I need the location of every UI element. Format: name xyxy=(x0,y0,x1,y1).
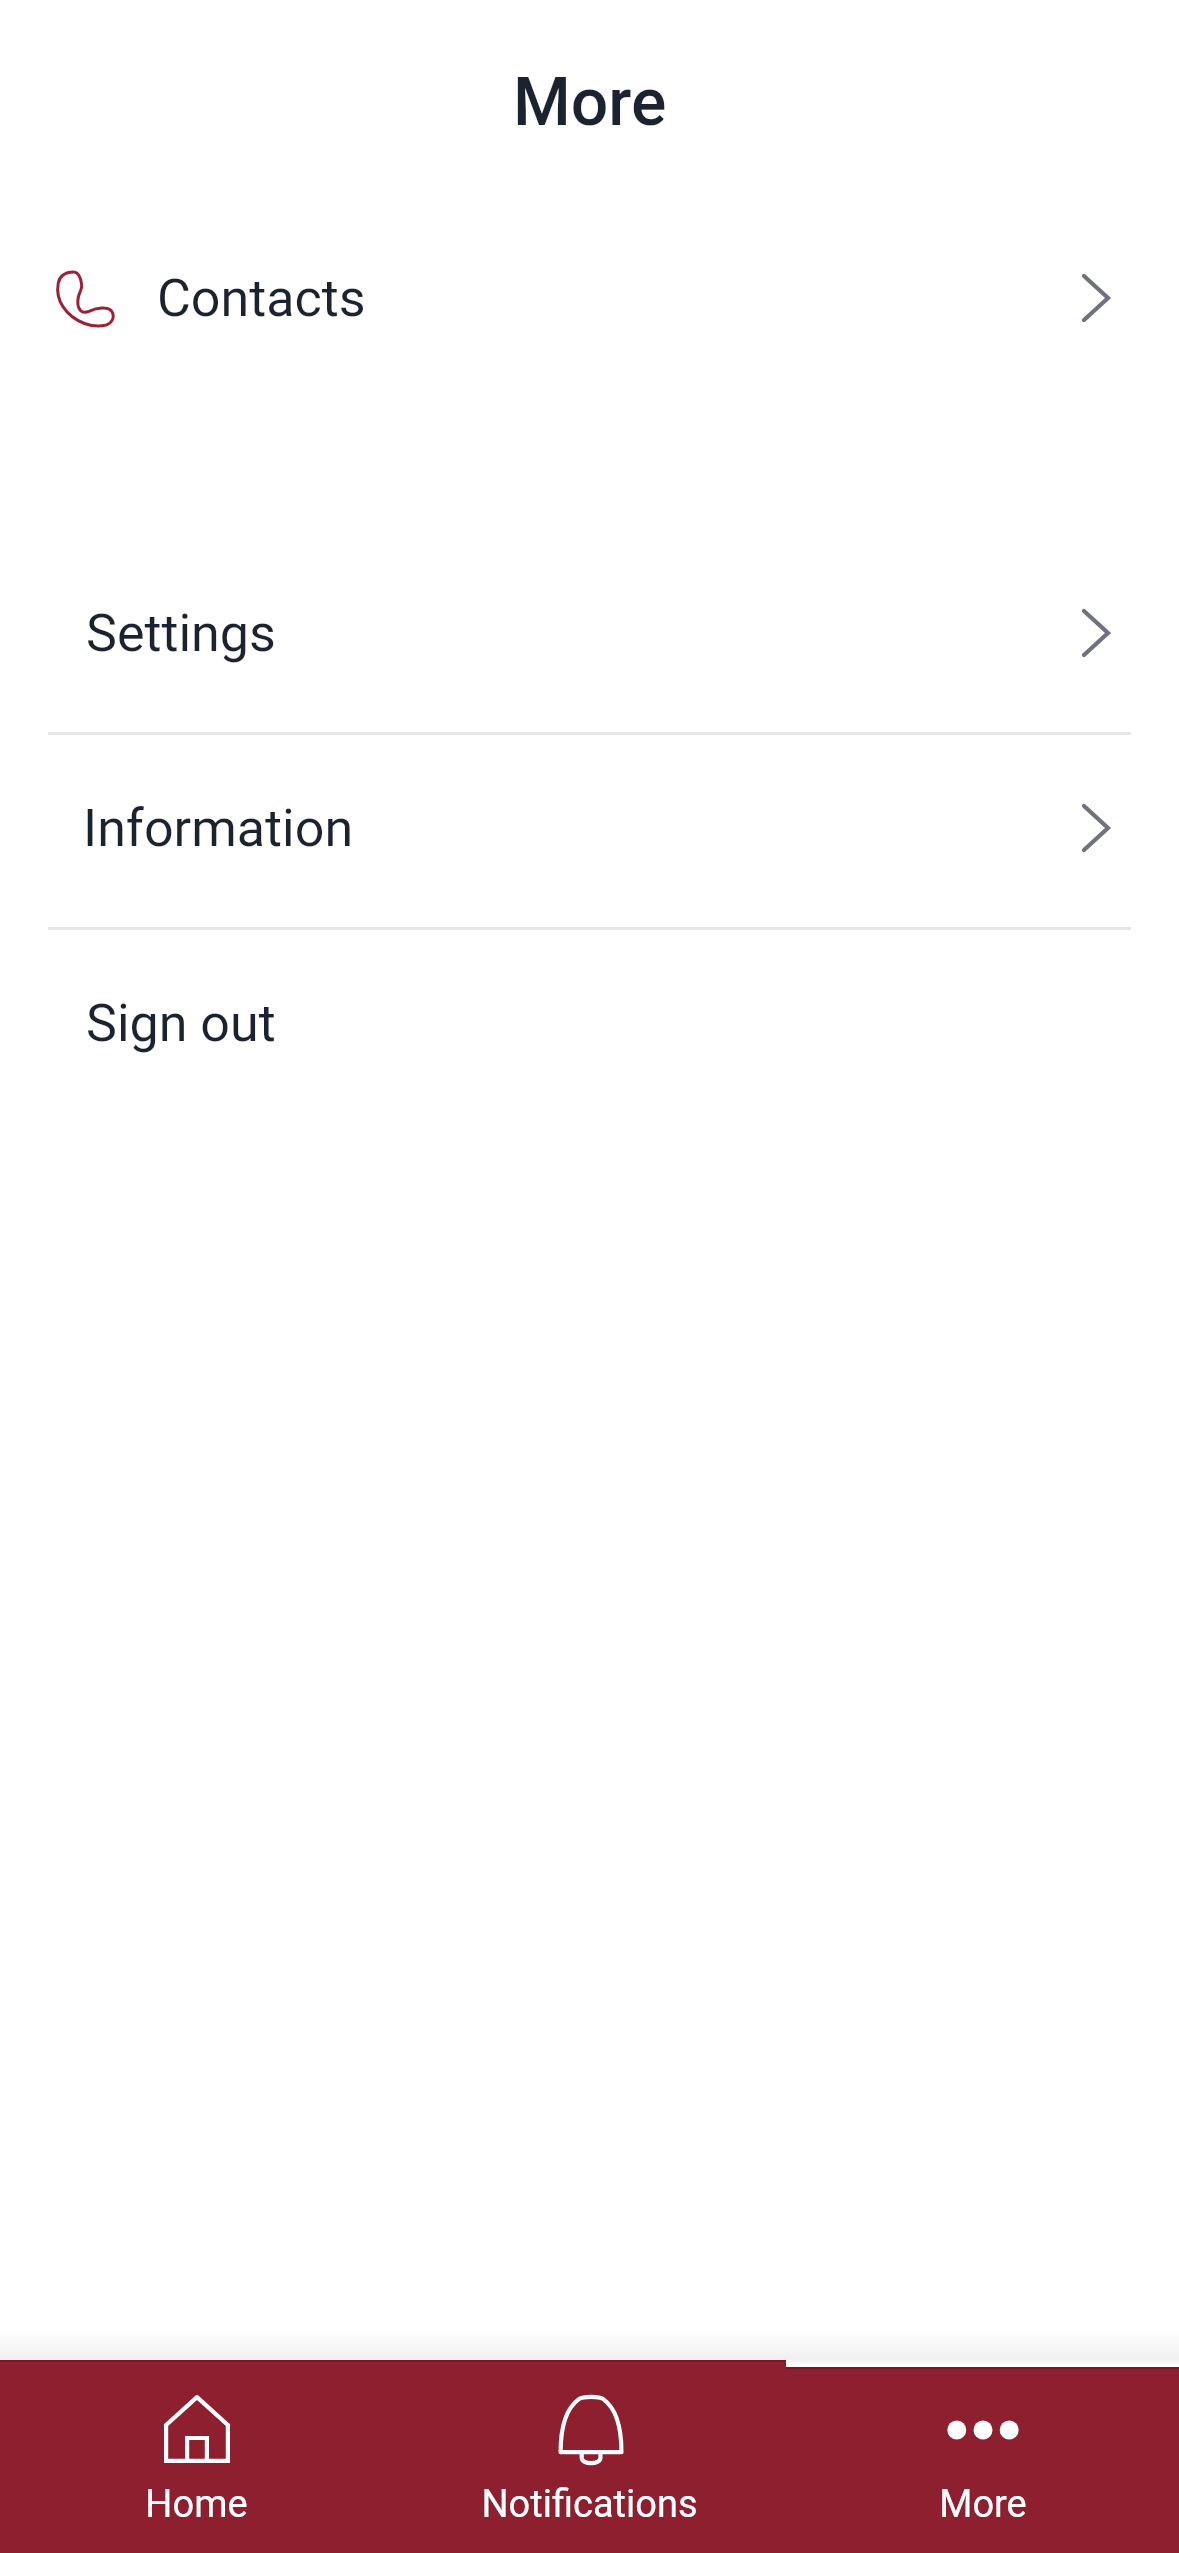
staticText: Sign out xyxy=(86,993,276,1054)
staticText: Information xyxy=(83,798,354,859)
button[interactable]: Information xyxy=(0,773,1179,883)
button[interactable]: More xyxy=(786,2360,1179,2553)
other: Open Contacts xyxy=(1082,274,1110,322)
staticText: Contacts xyxy=(157,268,366,329)
staticText: Settings xyxy=(86,603,276,664)
button[interactable]: Home xyxy=(0,2360,393,2553)
other: Open Information xyxy=(1082,804,1110,852)
other: Phone xyxy=(55,270,114,326)
other: Open Settings xyxy=(1082,609,1110,657)
staticText: Notifications xyxy=(481,2482,698,2527)
button[interactable]: Settings xyxy=(0,578,1179,688)
button[interactable]: Sign out xyxy=(0,968,1179,1078)
staticText: More xyxy=(939,2482,1027,2527)
button[interactable]: Phone xyxy=(0,242,1179,354)
button[interactable]: Notifications xyxy=(393,2360,786,2553)
staticText: Home xyxy=(145,2482,248,2527)
staticText: More xyxy=(513,64,667,141)
